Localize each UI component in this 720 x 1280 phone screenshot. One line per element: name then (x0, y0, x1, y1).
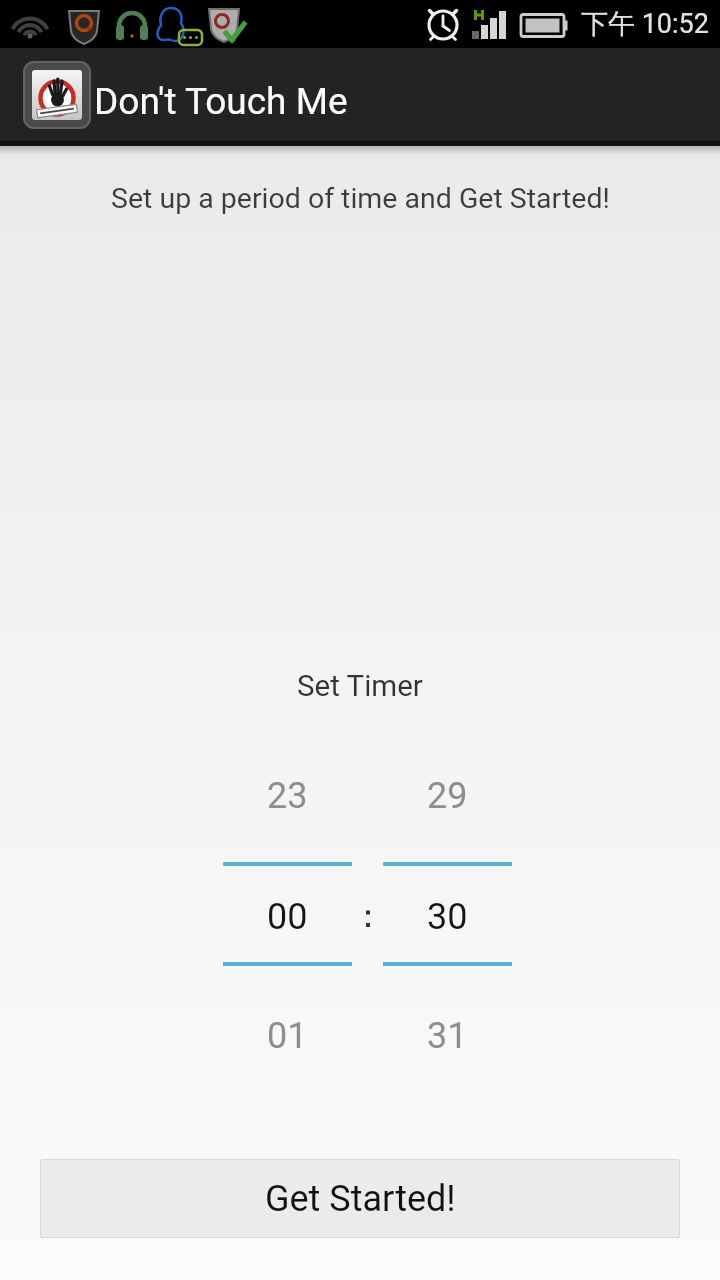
staticText: Set Timer (297, 669, 423, 704)
staticText: Don't Touch Me (94, 80, 348, 123)
button[interactable]: 29 (383, 760, 512, 1100)
staticText: 23 (267, 775, 308, 817)
staticText: 00 (267, 896, 308, 938)
staticText: Set up a period of time and Get Started! (111, 182, 610, 215)
staticText: 下午 10:52 (581, 7, 709, 41)
staticText: 29 (427, 775, 468, 817)
button[interactable]: Get Started! (40, 1159, 680, 1238)
staticText: 30 (427, 896, 468, 938)
button[interactable]: 23 (223, 760, 352, 1100)
staticText: Get Started! (265, 1178, 456, 1220)
staticText: 31 (427, 1015, 468, 1057)
staticText: 01 (267, 1015, 308, 1057)
